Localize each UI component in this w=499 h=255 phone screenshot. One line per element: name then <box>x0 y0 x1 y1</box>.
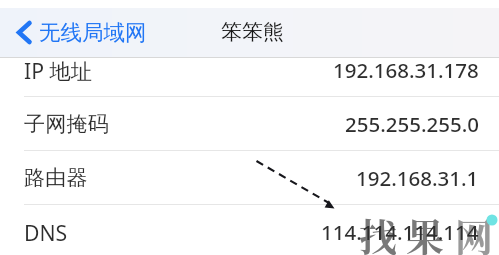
other: Back <box>16 20 32 45</box>
button[interactable]: IP 地址 <box>0 43 499 97</box>
staticText: IP 地址 <box>24 56 92 85</box>
staticText: 无线局域网 <box>39 19 147 46</box>
staticText: 笨笨熊 <box>221 19 284 45</box>
button[interactable]: Back <box>0 14 157 50</box>
button[interactable]: 路由器 <box>0 151 499 205</box>
staticText: 192.168.31.1 <box>356 164 479 192</box>
staticText: 路由器 <box>24 165 88 192</box>
staticText: 找果 <box>359 207 453 255</box>
staticText: 网 <box>455 207 494 255</box>
staticText: 114.114.114.114 <box>321 218 479 246</box>
button[interactable]: 子网掩码 <box>0 97 499 151</box>
staticText: 192.168.31.178 <box>333 56 479 84</box>
staticText: DNS <box>24 218 68 247</box>
staticText: 255.255.255.0 <box>345 110 479 138</box>
staticText: 子网掩码 <box>24 111 109 138</box>
button[interactable]: DNS <box>0 205 499 255</box>
